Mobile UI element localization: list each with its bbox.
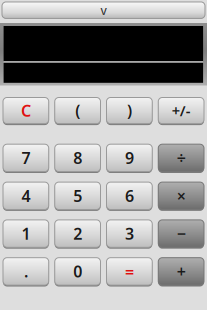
staticText: 4 — [21, 185, 30, 206]
staticText: ÷ — [177, 147, 186, 168]
staticText: +/- — [172, 101, 191, 120]
button[interactable]: ( — [55, 97, 101, 124]
button[interactable]: . — [3, 258, 49, 285]
staticText: C — [21, 100, 31, 121]
staticText: − — [177, 223, 186, 244]
staticText: ( — [75, 100, 80, 121]
button[interactable]: 7 — [3, 144, 49, 172]
button[interactable]: 0 — [55, 258, 101, 285]
button[interactable]: 6 — [106, 182, 152, 209]
staticText: 6 — [125, 185, 134, 206]
button[interactable]: × — [158, 182, 204, 209]
button[interactable]: ÷ — [158, 144, 204, 172]
staticText: × — [177, 185, 186, 206]
staticText: 8 — [73, 147, 82, 168]
button[interactable]: + — [158, 258, 204, 285]
staticText: 3 — [125, 223, 134, 244]
staticText: 2 — [73, 223, 82, 244]
staticText: . — [24, 261, 28, 282]
staticText: 0 — [73, 261, 82, 282]
staticText: + — [177, 261, 186, 282]
staticText: = — [125, 261, 134, 282]
staticText: 1 — [21, 223, 30, 244]
button[interactable]: 2 — [55, 220, 101, 247]
button[interactable]: 8 — [55, 144, 101, 172]
button[interactable]: 5 — [55, 182, 101, 209]
button[interactable]: +/- — [158, 97, 204, 124]
button[interactable]: ) — [106, 97, 152, 124]
button[interactable]: 9 — [106, 144, 152, 172]
button[interactable]: C — [3, 97, 49, 124]
button[interactable]: = — [106, 258, 152, 285]
button[interactable]: 3 — [106, 220, 152, 247]
staticText: v — [100, 2, 106, 18]
staticText: ) — [127, 100, 132, 121]
staticText: 5 — [73, 185, 82, 206]
button[interactable]: Collapse keypad — [2, 2, 205, 18]
button[interactable]: − — [158, 220, 204, 247]
staticText: 7 — [21, 147, 30, 168]
button[interactable]: 1 — [3, 220, 49, 247]
staticText: 9 — [125, 147, 134, 168]
button[interactable]: 4 — [3, 182, 49, 209]
